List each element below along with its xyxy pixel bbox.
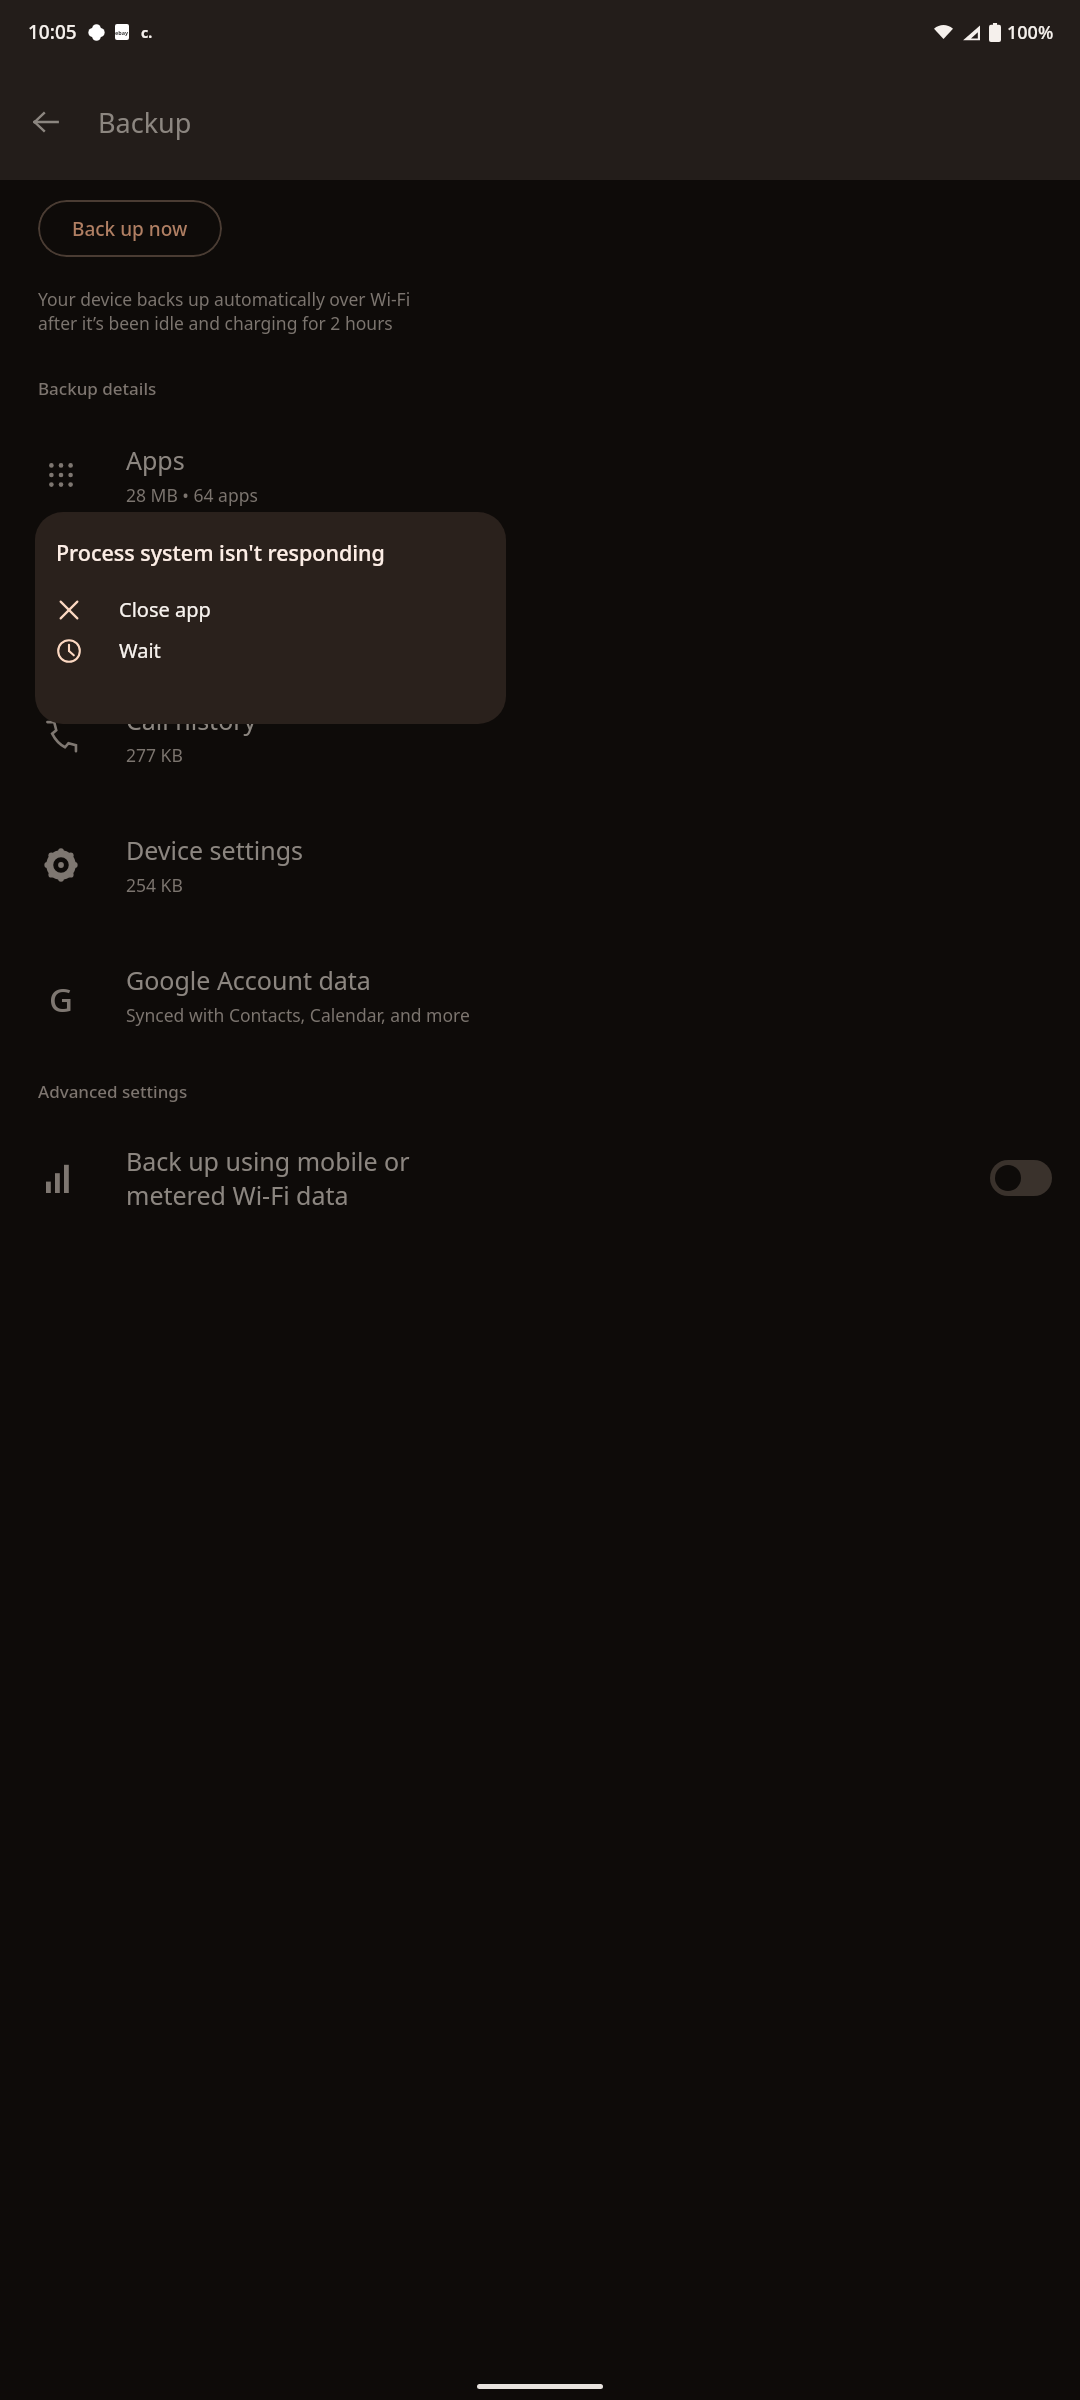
staticText: Back up now (72, 216, 188, 242)
staticText: Device settings (126, 833, 303, 867)
staticText: 254 KB (126, 873, 183, 897)
staticText: G (49, 977, 73, 1013)
staticText: 100% (1007, 20, 1054, 45)
button[interactable]: Back up using mobile or metered Wi-Fi da… (0, 1113, 1080, 1243)
staticText: c. (141, 23, 153, 42)
button[interactable]: G (0, 930, 1080, 1060)
button[interactable]: Close app (35, 589, 506, 630)
staticText: ebay (115, 29, 129, 36)
button[interactable] (990, 1160, 1052, 1196)
button[interactable]: Back (22, 98, 70, 146)
staticText: Backup (98, 104, 192, 141)
staticText: Synced with Contacts, Calendar, and more (126, 1003, 470, 1027)
staticText: 277 KB (126, 743, 183, 767)
button[interactable]: Back up now (38, 200, 222, 257)
button[interactable]: Call history (0, 670, 1080, 800)
staticText: Wait (119, 637, 161, 664)
button[interactable]: Device settings (0, 800, 1080, 930)
staticText: Advanced settings (38, 1080, 188, 1103)
button[interactable]: Wait (35, 630, 506, 671)
staticText: 10:05 (28, 19, 77, 45)
staticText: Back up using mobile or metered Wi-Fi da… (126, 1144, 410, 1212)
button[interactable]: Apps (0, 410, 1080, 540)
staticText: 28 MB • 64 apps (126, 483, 258, 507)
staticText: Call history (126, 703, 257, 737)
staticText: Process system isn't responding (56, 538, 385, 567)
staticText: Backup details (38, 377, 157, 400)
staticText: Backed up (126, 613, 212, 637)
staticText: Google Account data (126, 963, 371, 997)
staticText: Close app (119, 596, 211, 623)
staticText: Apps (126, 443, 185, 477)
button[interactable]: Photos & videos (0, 540, 1080, 670)
staticText: Photos & videos (126, 573, 315, 607)
staticText: Your device backs up automatically over … (38, 287, 411, 335)
